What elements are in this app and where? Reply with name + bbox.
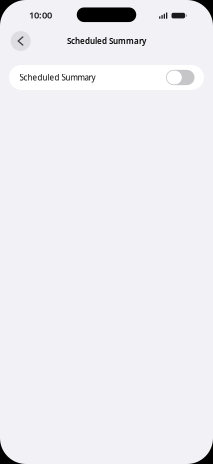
staticText: Scheduled Summary [67, 36, 146, 46]
button[interactable]: Back [9, 29, 33, 53]
staticText: Scheduled Summary [19, 72, 95, 83]
staticText: 10:00 [29, 9, 52, 21]
button[interactable]: Scheduled Summary [9, 65, 204, 90]
